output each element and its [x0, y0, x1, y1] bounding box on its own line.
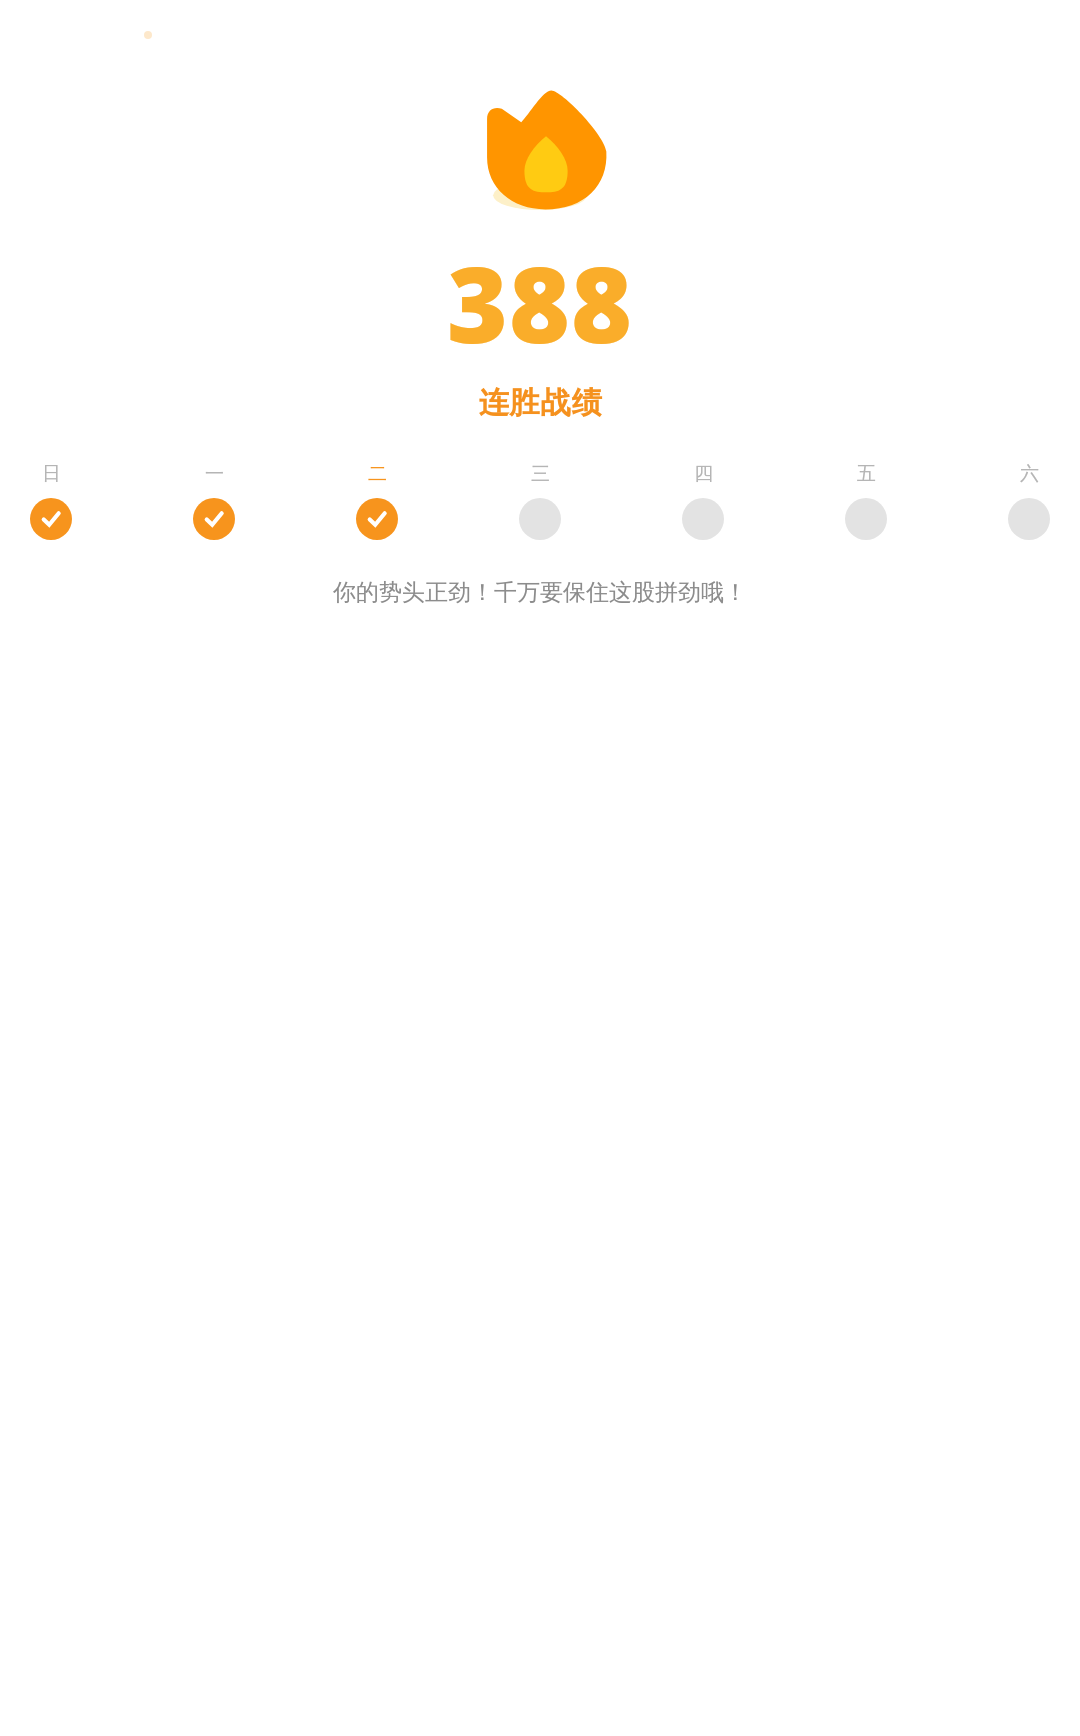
staticText: 388	[447, 232, 633, 374]
staticText: 连胜战绩	[478, 384, 602, 422]
staticText: 你的势头正劲！千万要保住这股拼劲哦！	[333, 578, 747, 607]
staticText: 日	[42, 462, 61, 486]
staticText: 五	[857, 462, 876, 486]
button[interactable]: 三	[519, 462, 561, 540]
staticText: 一	[205, 462, 224, 486]
button[interactable]: 一	[193, 462, 235, 540]
staticText: 三	[531, 462, 550, 486]
button[interactable]: 四	[682, 462, 724, 540]
button[interactable]: 六	[1008, 462, 1050, 540]
button[interactable]: 五	[845, 462, 887, 540]
staticText: 四	[694, 462, 713, 486]
staticText: 六	[1020, 462, 1039, 486]
button[interactable]: 二	[356, 462, 398, 540]
button[interactable]: 日	[30, 462, 72, 540]
staticText: 二	[368, 462, 387, 486]
